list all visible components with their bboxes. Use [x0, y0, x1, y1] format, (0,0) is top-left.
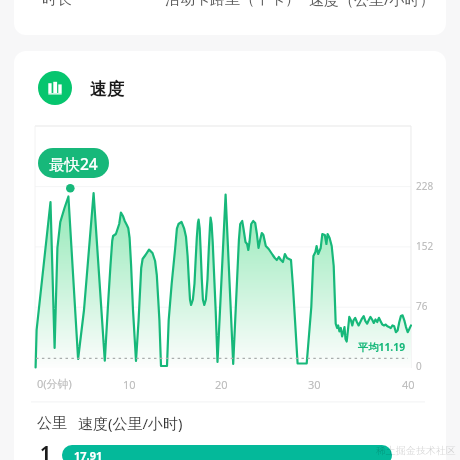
- staticText: 速度（公里/小时）: [309, 0, 435, 9]
- staticText: 公里: [37, 414, 67, 433]
- staticText: 30: [308, 377, 321, 392]
- staticText: 速度(公里/小时): [78, 413, 183, 433]
- button[interactable]: 最快24: [38, 148, 109, 178]
- staticText: 速度: [90, 79, 124, 100]
- staticText: 40: [402, 377, 415, 392]
- staticText: 20: [215, 377, 228, 392]
- staticText: 17.91: [74, 448, 103, 460]
- staticText: 228: [416, 179, 434, 193]
- other: Speed statistics: [38, 71, 72, 105]
- staticText: 时长: [42, 0, 72, 9]
- staticText: 1: [40, 440, 51, 460]
- staticText: 10: [123, 377, 136, 392]
- staticText: 76: [416, 299, 428, 313]
- staticText: 最快24: [49, 153, 98, 174]
- staticText: 0: [416, 359, 422, 373]
- staticText: 稀土掘金技术社区: [376, 444, 456, 457]
- staticText: 0(分钟): [37, 376, 72, 391]
- button[interactable]: 时长: [14, 0, 446, 35]
- staticText: 平均11.19: [358, 340, 406, 354]
- staticText: 152: [416, 239, 434, 253]
- button[interactable]: 1: [14, 440, 446, 460]
- staticText: 活动卡路里（千卡）: [165, 0, 300, 9]
- button[interactable]: Speed statistics: [14, 58, 446, 117]
